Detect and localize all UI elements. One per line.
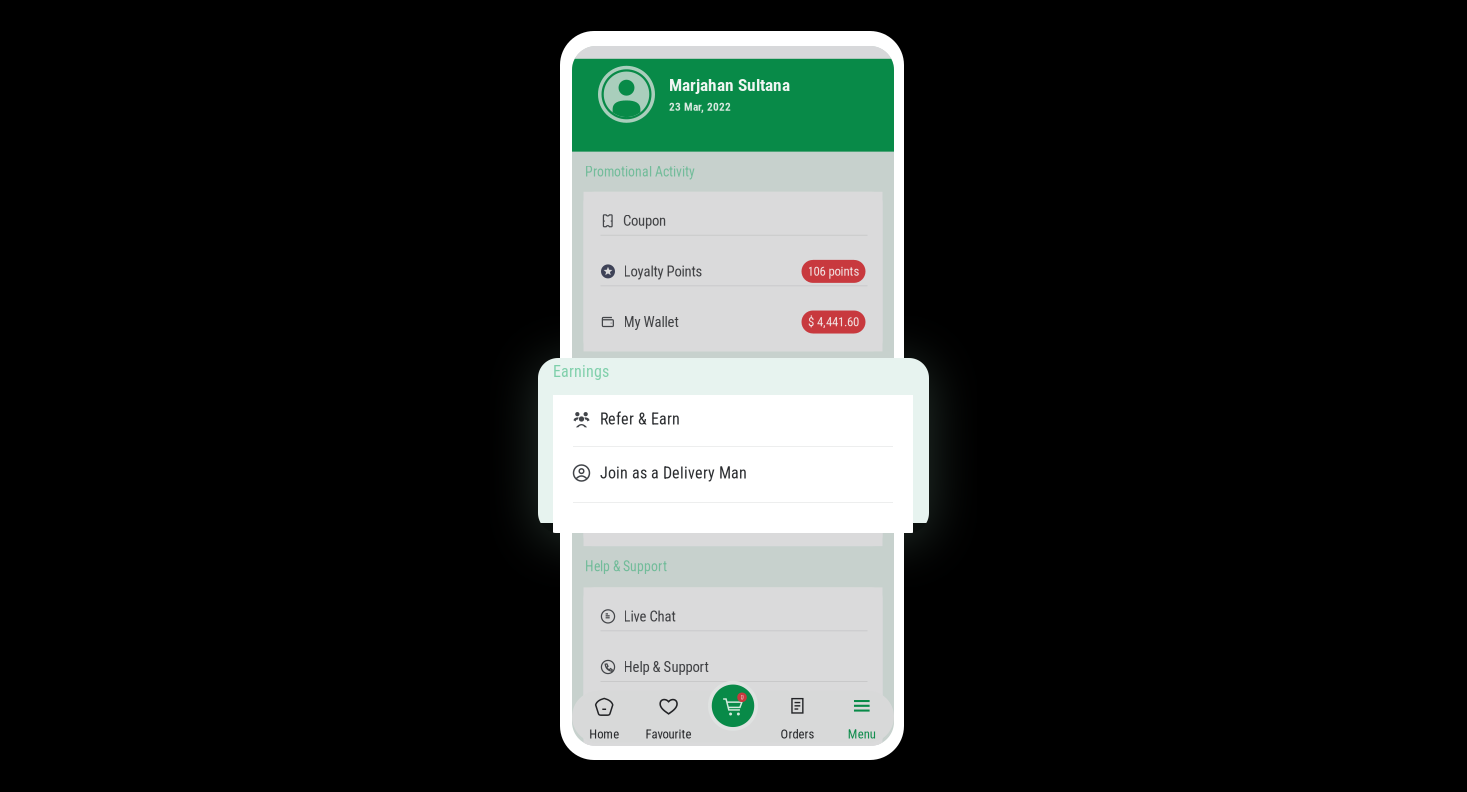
staticText: Refer & Earn: [623, 407, 692, 424]
staticText: Terms & Conditions: [623, 709, 733, 726]
button[interactable]: Refer & Earn: [553, 395, 913, 447]
staticText: $ 4,441.60: [808, 314, 859, 329]
staticText: 23 Mar, 2022: [669, 100, 731, 114]
button[interactable]: Favourite: [636, 691, 701, 743]
button[interactable]: My Wallet: [583, 293, 882, 344]
button[interactable]: Cart: [707, 680, 759, 732]
button[interactable]: Help & Support: [583, 638, 882, 689]
staticText: Earnings: [553, 362, 609, 381]
button[interactable]: Refer & Earn: [583, 387, 882, 437]
staticText: Promotional Activity: [585, 164, 695, 180]
staticText: Home: [589, 727, 619, 742]
staticText: Help & Support: [585, 558, 667, 574]
button[interactable]: Join as a Delivery Man: [553, 447, 913, 503]
button[interactable]: Coupon: [583, 192, 882, 242]
staticText: 0: [740, 693, 743, 701]
button[interactable]: Terms & Conditions: [583, 689, 882, 739]
button[interactable]: Live Chat: [583, 587, 882, 638]
staticText: Loyalty Points: [623, 263, 702, 280]
staticText: My Wallet: [623, 313, 678, 331]
staticText: Help & Support: [623, 658, 708, 676]
button[interactable]: Join as a Restaurant: [583, 488, 882, 538]
button[interactable]: Join as a Delivery Man: [583, 437, 882, 488]
staticText: Join as a Delivery Man: [600, 464, 747, 482]
staticText: Earnings: [585, 364, 633, 380]
staticText: Join as a Delivery Man: [623, 458, 750, 475]
button[interactable]: Home: [572, 691, 636, 743]
staticText: Favourite: [646, 727, 692, 742]
button[interactable]: Loyalty Points: [583, 242, 882, 293]
staticText: Marjahan Sultana: [669, 75, 790, 95]
staticText: Menu: [848, 727, 876, 742]
staticText: Live Chat: [623, 608, 675, 625]
staticText: Coupon: [623, 212, 666, 229]
staticText: Orders: [780, 727, 814, 742]
button[interactable]: Orders: [765, 691, 830, 743]
staticText: Refer & Earn: [600, 410, 680, 428]
staticText: 106 points: [807, 264, 859, 279]
button[interactable]: Menu: [830, 691, 894, 743]
